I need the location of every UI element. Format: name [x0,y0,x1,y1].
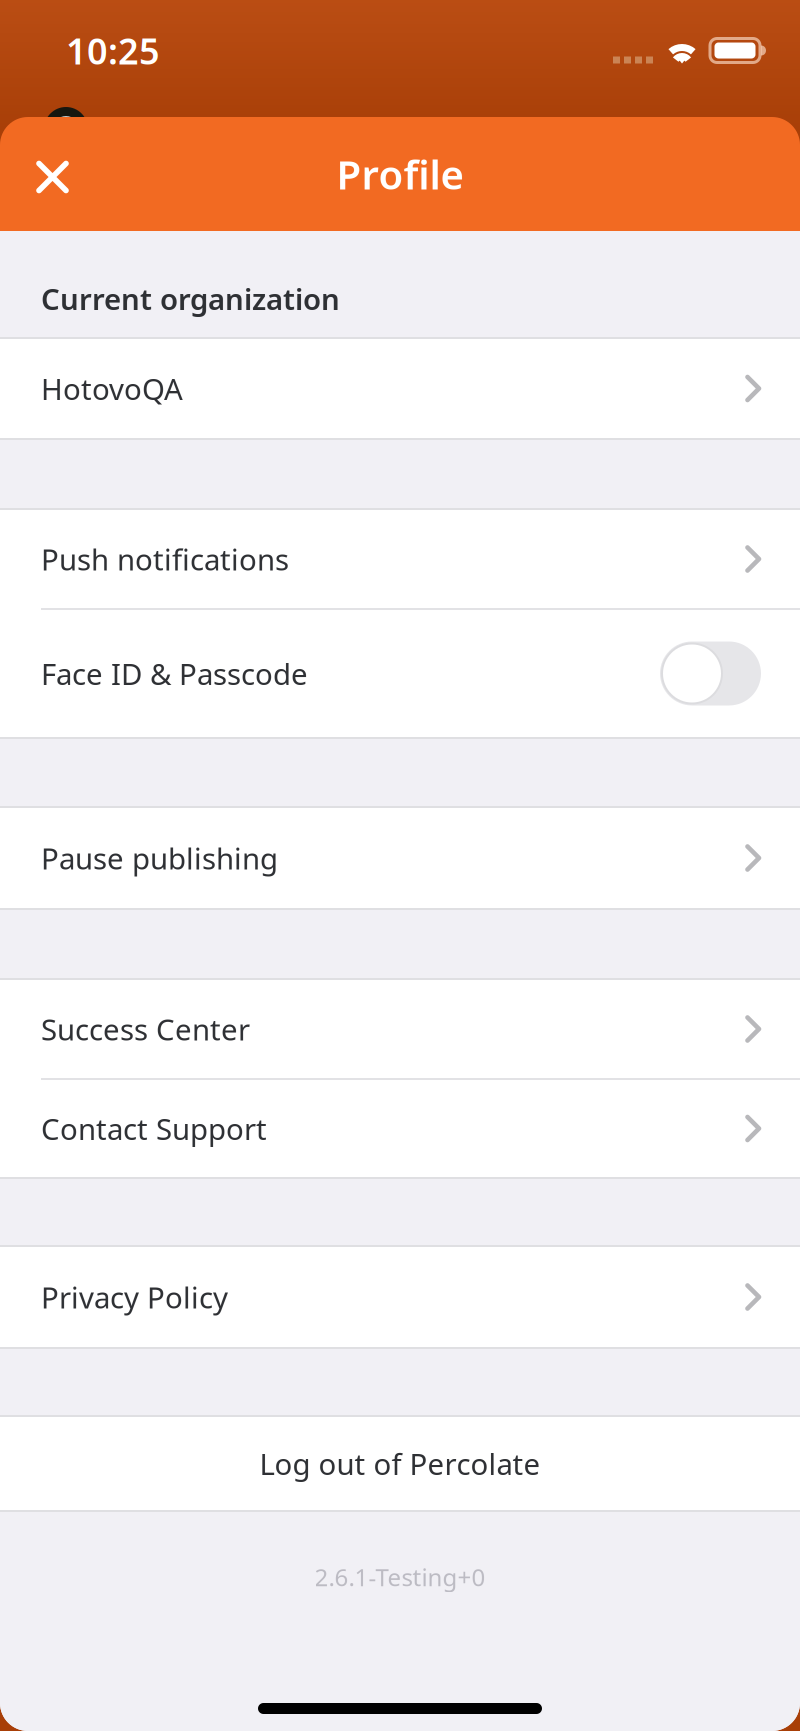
staticText: Profile [336,147,463,200]
button[interactable]: Success Center [0,980,800,1078]
staticText: Privacy Policy [41,1277,228,1316]
staticText: Face ID & Passcode [41,654,308,693]
staticText: 2.6.1-Testing+0 [314,1561,485,1593]
staticText: 10:25 [66,27,160,74]
staticText: Current organization [41,279,340,318]
button[interactable]: Face ID & Passcode [0,610,800,737]
staticText: Log out of Percolate [259,1444,540,1483]
button[interactable]: Contact Support [0,1080,800,1177]
button[interactable]: Log out of Percolate [0,1417,800,1510]
staticText: Contact Support [41,1109,267,1148]
button[interactable]: Privacy Policy [0,1247,800,1347]
staticText: Success Center [41,1009,250,1048]
staticText: Push notifications [41,539,289,578]
button[interactable]: HotovoQA [0,339,800,438]
button[interactable]: Pause publishing [0,808,800,908]
staticText: Pause publishing [41,838,278,877]
staticText: HotovoQA [41,369,183,408]
button[interactable]: Close [18,141,83,206]
button[interactable]: Push notifications [0,510,800,608]
